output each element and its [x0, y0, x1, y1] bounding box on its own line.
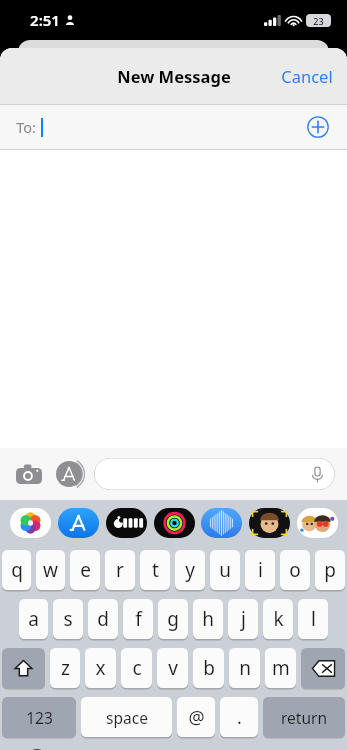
button[interactable]: w [36, 550, 65, 590]
button[interactable]: b [193, 648, 224, 688]
other: Dictate [308, 465, 326, 483]
button[interactable]: m [265, 648, 296, 688]
staticText: c [132, 655, 142, 681]
button[interactable]: Apple Cash [104, 507, 148, 539]
button[interactable]: e [70, 550, 100, 590]
staticText: h [202, 606, 214, 632]
staticText: . [237, 705, 242, 730]
staticText: Cancel [281, 65, 333, 87]
staticText: @ [188, 705, 205, 730]
staticText: q [11, 557, 23, 583]
staticText: g [167, 606, 179, 632]
staticText: d [97, 606, 109, 632]
button[interactable]: Memoji [247, 507, 291, 539]
staticText: v [168, 655, 178, 681]
staticText: z [61, 655, 70, 681]
button[interactable]: Audio message [199, 507, 243, 539]
button[interactable]: r [105, 550, 135, 590]
button[interactable]: Photos [8, 507, 52, 539]
staticText: return [281, 707, 327, 728]
button[interactable]: @ [177, 697, 215, 737]
button[interactable]: Dictate [94, 458, 335, 490]
staticText: To: [16, 117, 36, 137]
button[interactable]: App Store [56, 507, 100, 539]
staticText: New Message [117, 65, 231, 87]
button[interactable]: k [263, 599, 293, 639]
staticText: k [273, 606, 284, 632]
button[interactable]: y [175, 550, 205, 590]
button[interactable]: Cancel [267, 55, 347, 97]
staticText: 23 [313, 15, 324, 27]
staticText: l [311, 606, 316, 632]
staticText: j [241, 606, 246, 632]
button[interactable]: . [220, 697, 258, 737]
button[interactable]: a [19, 599, 48, 639]
button[interactable]: u [210, 550, 240, 590]
button[interactable]: o [280, 550, 310, 590]
staticText: r [116, 557, 124, 583]
staticText: s [63, 606, 73, 632]
button[interactable]: x [85, 648, 116, 688]
button[interactable]: s [53, 599, 83, 639]
staticText: x [95, 655, 106, 681]
button[interactable]: c [121, 648, 152, 688]
button[interactable]: Fitness [152, 507, 196, 539]
staticText: a [28, 606, 39, 632]
button[interactable]: p [315, 550, 345, 590]
button[interactable]: d [88, 599, 118, 639]
staticText: b [203, 655, 215, 681]
button[interactable]: v [157, 648, 188, 688]
button[interactable]: Emoji [22, 745, 52, 750]
button[interactable]: q [2, 550, 31, 590]
staticText: e [80, 557, 91, 583]
staticText: i [258, 557, 263, 583]
button[interactable]: f [123, 599, 153, 639]
button[interactable]: 123 [2, 697, 76, 737]
button[interactable]: Camera [12, 457, 46, 491]
staticText: u [219, 557, 231, 583]
button[interactable]: Add contact [301, 110, 335, 144]
staticText: o [289, 557, 301, 583]
staticText: w [43, 557, 58, 583]
button[interactable]: return [263, 697, 345, 737]
button[interactable]: space [81, 697, 172, 737]
staticText: space [106, 707, 148, 728]
staticText: n [239, 655, 251, 681]
button[interactable]: l [298, 599, 328, 639]
button[interactable]: Apps [52, 457, 86, 491]
button[interactable]: z [50, 648, 80, 688]
button[interactable]: Memoji stickers [295, 507, 339, 539]
button[interactable]: Backspace [301, 648, 345, 688]
button[interactable]: h [193, 599, 223, 639]
staticText: 2:51 [30, 10, 60, 30]
button[interactable]: n [229, 648, 260, 688]
button[interactable]: Shift [2, 648, 45, 688]
staticText: 123 [26, 707, 53, 728]
staticText: y [185, 557, 195, 583]
staticText: t [152, 557, 159, 583]
button[interactable]: j [228, 599, 258, 639]
staticText: p [324, 557, 336, 583]
button[interactable]: t [140, 550, 170, 590]
button[interactable]: g [158, 599, 188, 639]
staticText: f [135, 606, 142, 632]
button[interactable]: i [245, 550, 275, 590]
staticText: m [272, 655, 290, 681]
